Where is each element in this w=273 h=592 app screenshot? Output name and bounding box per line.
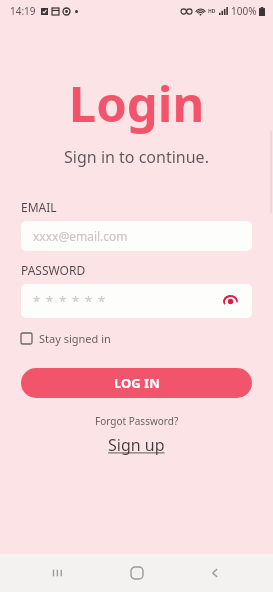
staticText: *	[46, 292, 54, 310]
button[interactable]: xxxx@email.com	[21, 221, 252, 251]
staticText: *	[85, 292, 93, 310]
button[interactable]: Show password	[220, 291, 240, 311]
staticText: 100%	[231, 4, 257, 18]
staticText: PASSWORD	[21, 262, 86, 278]
button[interactable]: Forgot Password?	[21, 414, 252, 428]
staticText: 14:19	[10, 4, 36, 18]
staticText: Sign up	[108, 434, 165, 456]
staticText: xxxx@email.com	[33, 228, 128, 244]
staticText: *	[33, 292, 41, 310]
button[interactable]: Sign up	[21, 434, 252, 456]
staticText: EMAIL	[21, 199, 57, 215]
button[interactable]: LOG IN	[21, 368, 252, 398]
staticText: Stay signed in	[39, 331, 111, 346]
staticText: HD	[208, 8, 216, 15]
staticText: *	[98, 292, 106, 310]
button[interactable]: *	[21, 284, 252, 318]
staticText: LOG IN	[114, 374, 160, 392]
staticText: *	[59, 292, 67, 310]
button[interactable]: Back	[195, 554, 235, 592]
staticText: *	[72, 292, 80, 310]
staticText: Forgot Password?	[95, 414, 179, 428]
staticText: Login	[21, 70, 252, 137]
staticText: Sign in to continue.	[21, 146, 252, 168]
button[interactable]: Stay signed in	[21, 329, 111, 348]
button[interactable]: Home	[117, 554, 157, 592]
button[interactable]: Recents	[38, 554, 78, 592]
